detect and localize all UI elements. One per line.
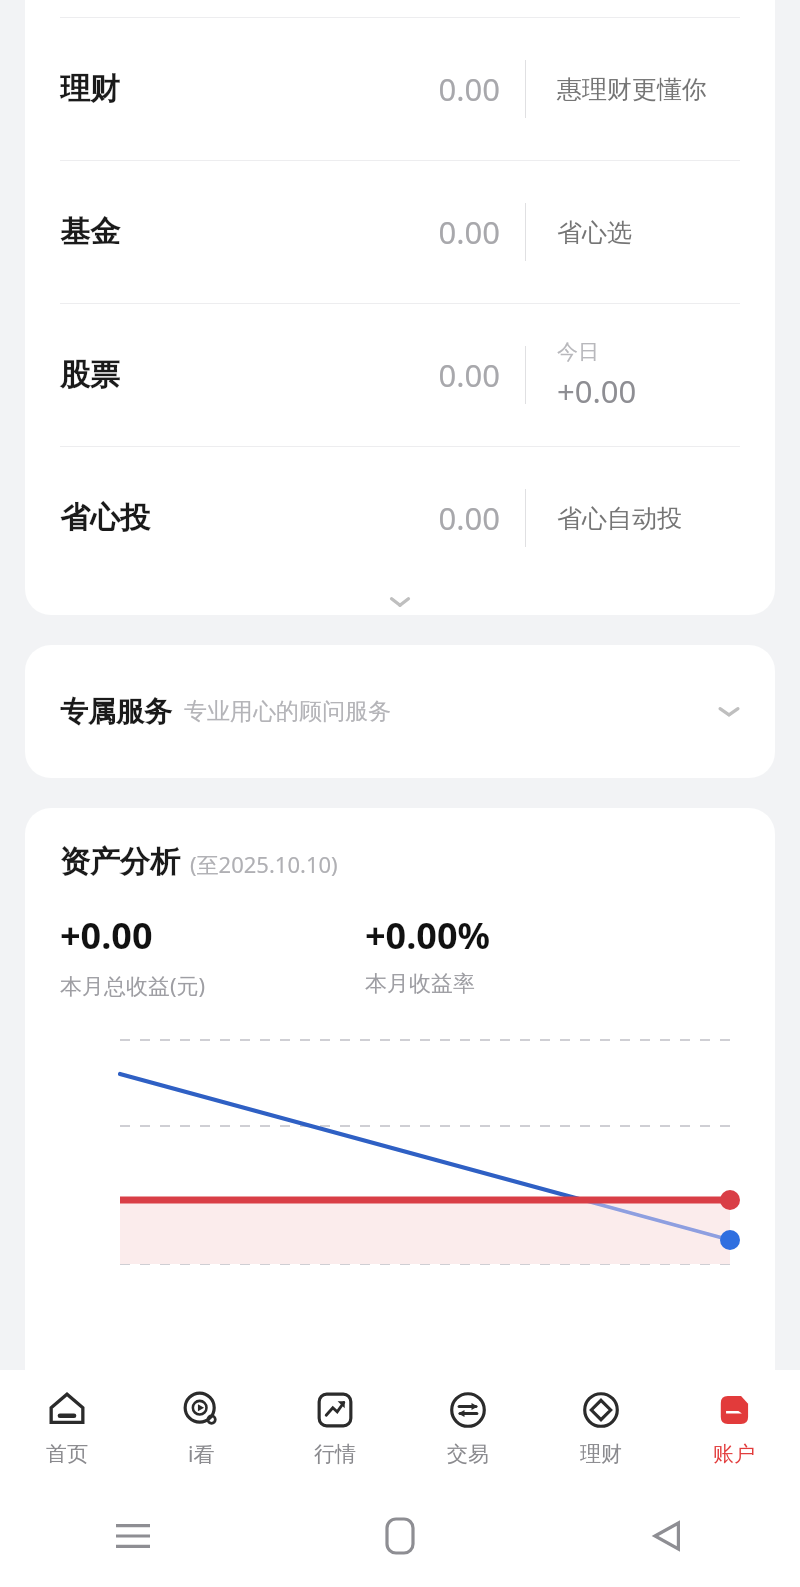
staticText: 行情 <box>314 1441 356 1467</box>
staticText: 股票 <box>60 356 120 394</box>
staticText: 基金 <box>60 213 120 251</box>
button[interactable]: 展开更多 <box>25 589 775 615</box>
button[interactable]: 交易 <box>401 1370 534 1485</box>
staticText: 首页 <box>46 1441 88 1467</box>
button[interactable]: 理财 <box>25 18 775 160</box>
button[interactable]: 专属服务 <box>25 645 775 778</box>
button[interactable]: 首页 <box>0 1370 134 1485</box>
staticText: 本月总收益(元) <box>60 970 206 1000</box>
staticText: 0.00 <box>275 211 500 253</box>
staticText: 惠理财更懂你 <box>557 74 707 105</box>
button[interactable]: 基金 <box>25 161 775 303</box>
staticText: 省心选 <box>557 217 632 248</box>
staticText: 省心自动投 <box>557 503 682 534</box>
staticText: 专属服务 <box>60 694 172 729</box>
staticText: (至2025.10.10) <box>190 849 338 879</box>
button[interactable]: 行情 <box>268 1370 401 1485</box>
staticText: 账户 <box>713 1441 755 1467</box>
button[interactable]: 账户 <box>667 1370 800 1485</box>
staticText: 0.00 <box>275 354 500 396</box>
staticText: 专业用心的顾问服务 <box>184 697 391 726</box>
staticText: 0.00 <box>275 68 500 110</box>
button[interactable]: Back <box>533 1485 800 1587</box>
staticText: +0.00 <box>60 911 153 960</box>
staticText: 理财 <box>60 70 120 108</box>
staticText: 今日 <box>557 339 599 365</box>
staticText: 交易 <box>447 1441 489 1467</box>
button[interactable]: Home <box>266 1485 533 1587</box>
button[interactable]: 股票 <box>25 304 775 446</box>
staticText: +0.00% <box>365 911 490 960</box>
staticText: 0.00 <box>275 497 500 539</box>
staticText: 资产分析 <box>60 843 180 881</box>
button[interactable]: 理财 <box>534 1370 667 1485</box>
staticText: i看 <box>188 1440 215 1469</box>
staticText: 省心投 <box>60 499 150 537</box>
button[interactable]: Recent apps <box>0 1485 266 1587</box>
staticText: 理财 <box>580 1441 622 1467</box>
button[interactable]: 省心投 <box>25 447 775 589</box>
staticText: +0.00 <box>557 370 637 412</box>
staticText: 本月收益率 <box>365 970 475 998</box>
button[interactable]: i看 <box>134 1370 268 1485</box>
